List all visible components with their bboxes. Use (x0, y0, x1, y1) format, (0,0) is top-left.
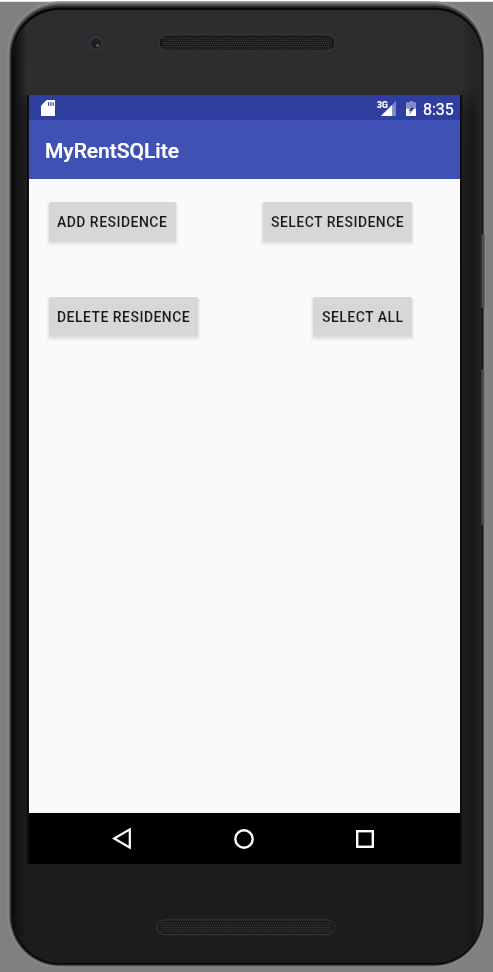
staticText: DELETE RESIDENCE (57, 309, 191, 325)
button[interactable]: ADD RESIDENCE (49, 202, 176, 241)
staticText: 3G (377, 100, 388, 110)
staticText: ADD RESIDENCE (57, 214, 168, 230)
button[interactable]: Recents (325, 813, 405, 864)
staticText: 8:35 (423, 100, 454, 119)
button[interactable]: DELETE RESIDENCE (49, 297, 198, 336)
button[interactable]: Back (82, 813, 162, 864)
staticText: SELECT RESIDENCE (271, 214, 405, 230)
staticText: SELECT ALL (322, 309, 404, 325)
staticText: MyRentSQLite (45, 139, 179, 164)
button[interactable]: SELECT ALL (313, 297, 412, 336)
button[interactable]: Home (204, 813, 284, 864)
button[interactable]: SELECT RESIDENCE (263, 202, 412, 241)
